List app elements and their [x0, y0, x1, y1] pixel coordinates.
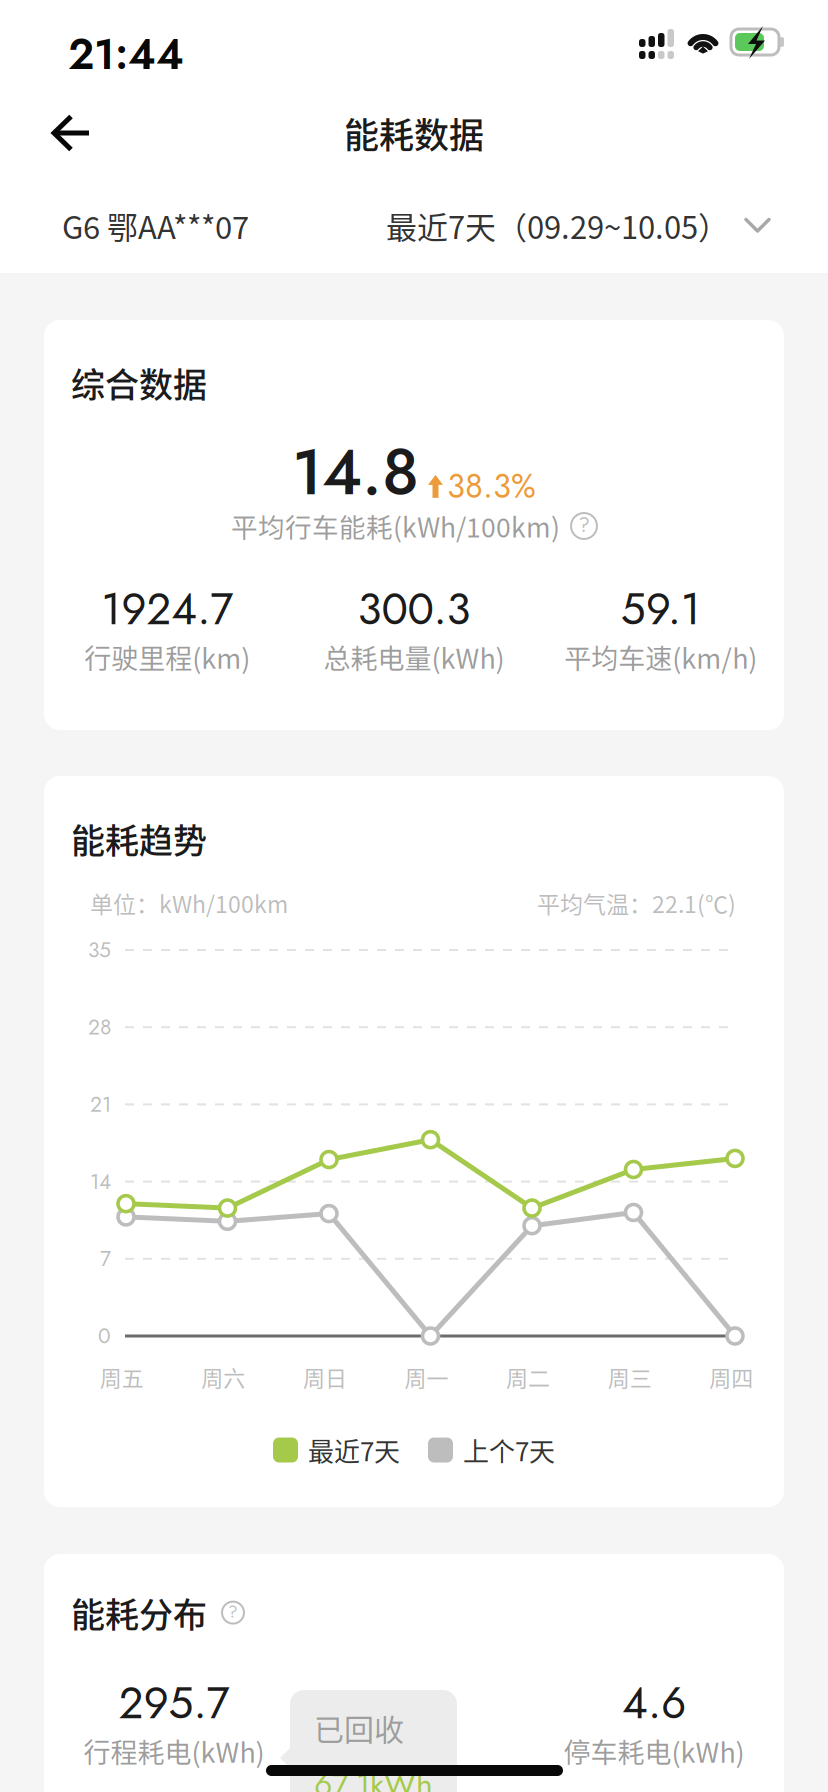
staticText: ? [578, 510, 589, 540]
staticText: 最近7天 [308, 1431, 400, 1469]
staticText: 能耗趋势 [71, 814, 207, 863]
staticText: 综合数据 [71, 358, 207, 407]
staticText: 周三 [608, 1361, 652, 1393]
staticText: 28 [88, 1012, 111, 1042]
button[interactable]: 最近7天（09.29~10.05） [352, 178, 772, 273]
staticText: ? [228, 1599, 238, 1624]
staticText: 周二 [506, 1361, 550, 1393]
staticText: 4.6 [622, 1671, 686, 1735]
staticText: 周五 [100, 1361, 144, 1393]
staticText: 平均车速(km/h) [564, 637, 757, 677]
staticText: 59.1 [621, 577, 701, 641]
button[interactable]: G6 鄂AA***07 [62, 178, 362, 273]
staticText: 能耗数据 [344, 108, 484, 158]
staticText: 平均行车能耗(kWh/100km) [231, 507, 560, 545]
staticText: 21 [90, 1089, 111, 1119]
staticText: 7 [100, 1244, 111, 1274]
staticText: 周日 [303, 1361, 347, 1393]
staticText: 行程耗电(kWh) [83, 1731, 264, 1771]
staticText: G6 鄂AA***07 [62, 203, 249, 248]
staticText: 38.3% [447, 463, 536, 510]
staticText: 67.1kWh [314, 1761, 433, 1792]
button[interactable]: 返回 [26, 88, 118, 178]
staticText: 35 [88, 935, 111, 965]
staticText: 300.3 [357, 577, 470, 641]
staticText: 295.7 [118, 1671, 229, 1735]
staticText: 14.8 [292, 426, 419, 518]
staticText: 周一 [404, 1361, 448, 1393]
staticText: 停车耗电(kWh) [563, 1731, 744, 1771]
staticText: 14 [90, 1166, 111, 1197]
staticText: 21:44 [68, 24, 184, 85]
staticText: 单位：kWh/100km [90, 886, 288, 920]
staticText: 已回收 [314, 1706, 404, 1749]
staticText: 能耗分布 [71, 1588, 207, 1637]
staticText: 上个7天 [463, 1431, 555, 1469]
staticText: 行驶里程(km) [84, 637, 250, 677]
staticText: 周四 [709, 1361, 753, 1393]
staticText: 最近7天（09.29~10.05） [386, 203, 729, 248]
staticText: 总耗电量(kWh) [323, 637, 504, 677]
staticText: 周六 [201, 1361, 245, 1393]
staticText: 平均气温：22.1(℃) [537, 886, 736, 920]
staticText: 1924.7 [101, 577, 233, 641]
staticText: 0 [98, 1321, 111, 1351]
